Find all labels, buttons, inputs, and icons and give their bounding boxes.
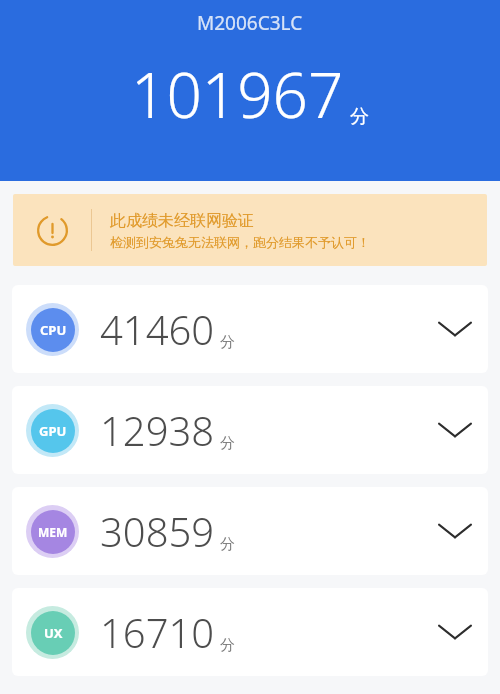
staticText: 分 — [350, 105, 369, 129]
staticText: 分 — [220, 636, 235, 655]
button[interactable]: Expand UX details — [428, 605, 482, 659]
staticText: 此成绩未经联网验证 — [110, 211, 254, 231]
staticText: UX — [44, 624, 63, 642]
staticText: 101967 — [131, 52, 344, 136]
staticText: 检测到安兔兔无法联网，跑分结果不予认可！ — [110, 234, 370, 250]
staticText: 分 — [220, 535, 235, 554]
staticText: 30859 — [100, 504, 215, 558]
staticText: 12938 — [100, 403, 215, 457]
staticText: 分 — [220, 434, 235, 453]
staticText: MEM — [38, 524, 68, 540]
other: Warning — [37, 215, 68, 246]
button[interactable]: Expand MEM details — [428, 504, 482, 558]
staticText: GPU — [39, 422, 67, 440]
button[interactable]: MEM — [12, 487, 488, 575]
staticText: CPU — [40, 321, 67, 339]
button[interactable]: Warning — [13, 194, 487, 266]
staticText: M2006C3LC — [197, 10, 303, 36]
staticText: 分 — [220, 333, 235, 352]
staticText: 16710 — [100, 605, 215, 659]
staticText: 41460 — [100, 302, 215, 356]
button[interactable]: Expand CPU details — [428, 302, 482, 356]
button[interactable]: Expand GPU details — [428, 403, 482, 457]
button[interactable]: GPU — [12, 386, 488, 474]
button[interactable]: CPU — [12, 285, 488, 373]
button[interactable]: UX — [12, 588, 488, 676]
